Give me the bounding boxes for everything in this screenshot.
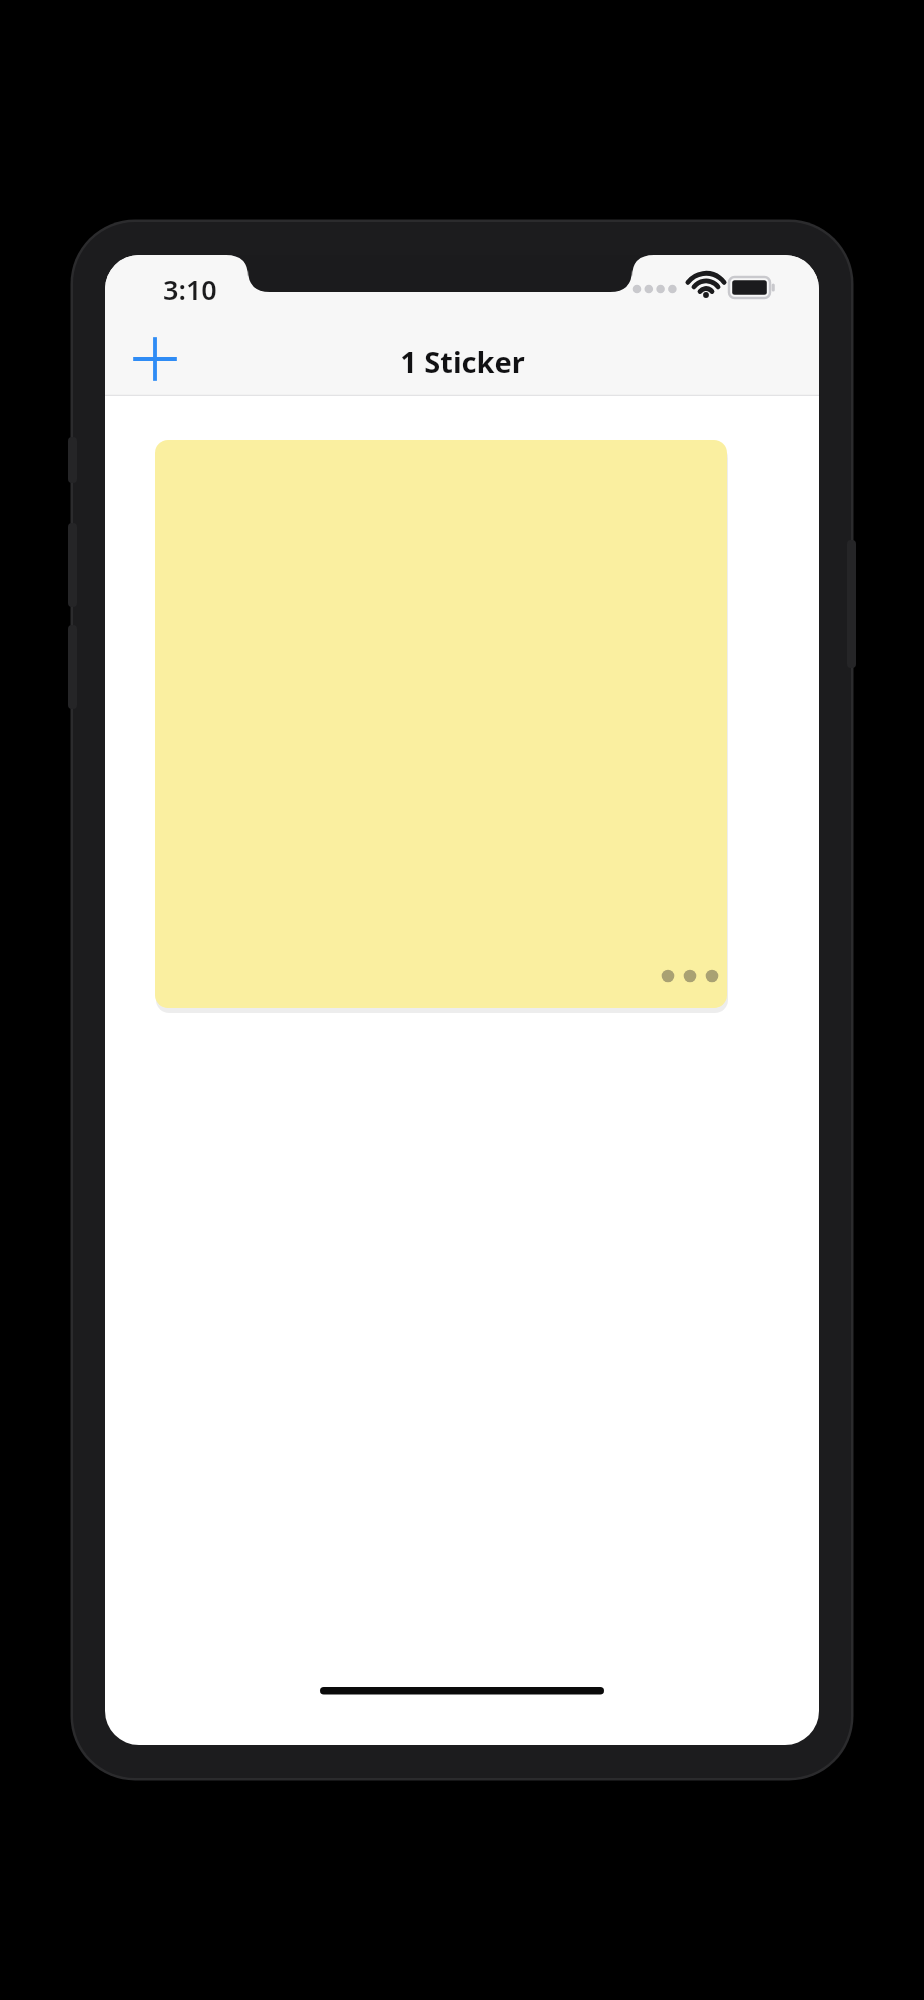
button[interactable]: Add sticker [118,322,192,396]
button[interactable]: More options [645,948,741,1004]
staticText: 3:10 [163,271,217,308]
staticText: 1 Sticker [400,342,525,381]
